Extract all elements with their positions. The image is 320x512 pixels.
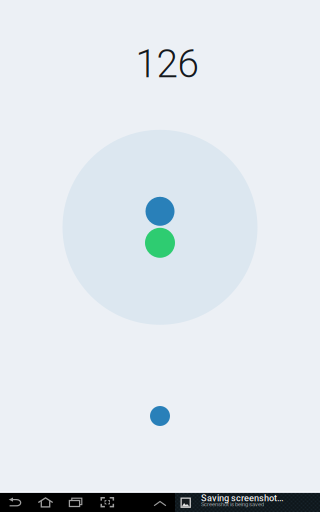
button[interactable]: Recent apps	[60, 493, 91, 512]
button[interactable]: Screenshot	[92, 493, 123, 512]
button[interactable]: Back	[0, 493, 30, 512]
button[interactable]: Open notifications	[140, 493, 180, 512]
button[interactable]: Increment counter	[62, 129, 257, 326]
button[interactable]: Reset counter	[150, 406, 170, 426]
staticText: 126	[135, 41, 198, 87]
button[interactable]: Saving screenshot…	[175, 493, 320, 512]
staticText: Saving screenshot…	[201, 493, 284, 503]
staticText: Screenshot is being saved	[201, 501, 264, 508]
button[interactable]: Home	[30, 493, 61, 512]
